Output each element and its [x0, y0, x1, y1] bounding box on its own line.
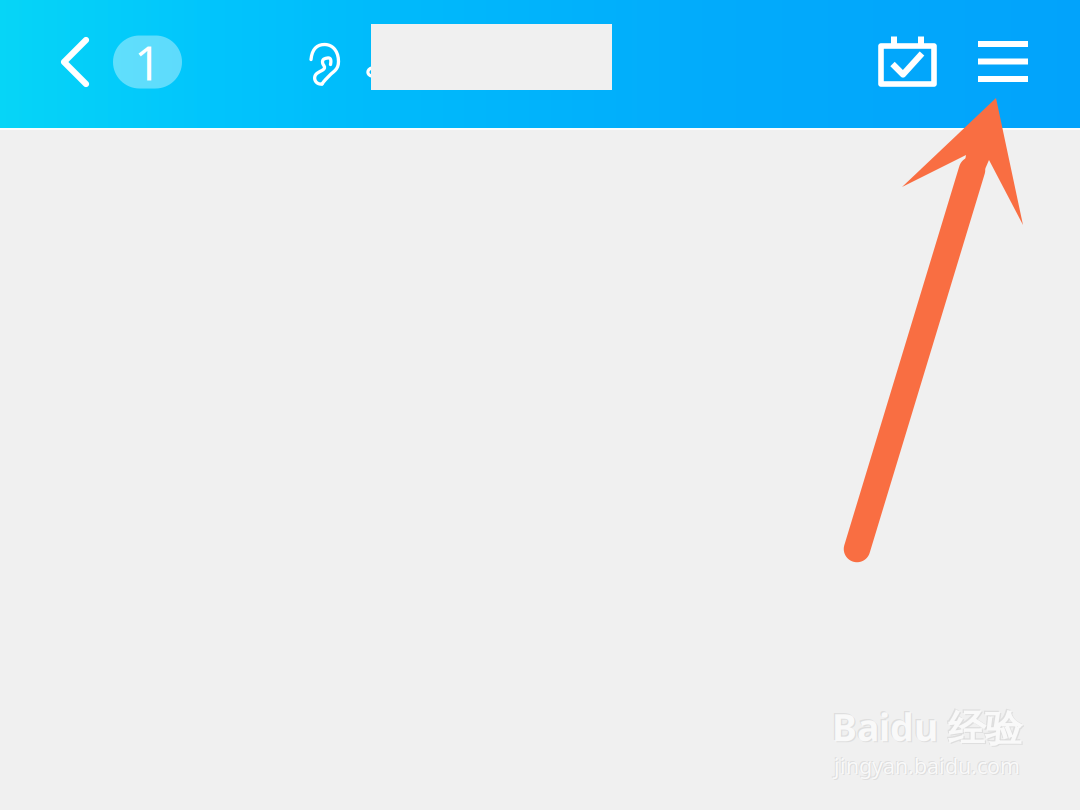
- staticText: jingyan.baidu.com: [833, 751, 1019, 779]
- button[interactable]: Calendar: [878, 0, 978, 128]
- staticText: jingyan.baidu.com: [834, 752, 1020, 780]
- staticText: 1: [134, 30, 161, 94]
- staticText: Baidu 经验: [831, 701, 1021, 750]
- button[interactable]: Step 1: [89, 0, 182, 128]
- button[interactable]: Back: [0, 0, 89, 128]
- staticText: Baidu 经验: [832, 702, 1022, 752]
- staticText: jingyan.baidu.com: [835, 753, 1021, 781]
- staticText: Baidu 经验: [833, 703, 1023, 753]
- button[interactable]: Listen: [182, 0, 341, 128]
- button[interactable]: Menu: [978, 0, 1080, 128]
